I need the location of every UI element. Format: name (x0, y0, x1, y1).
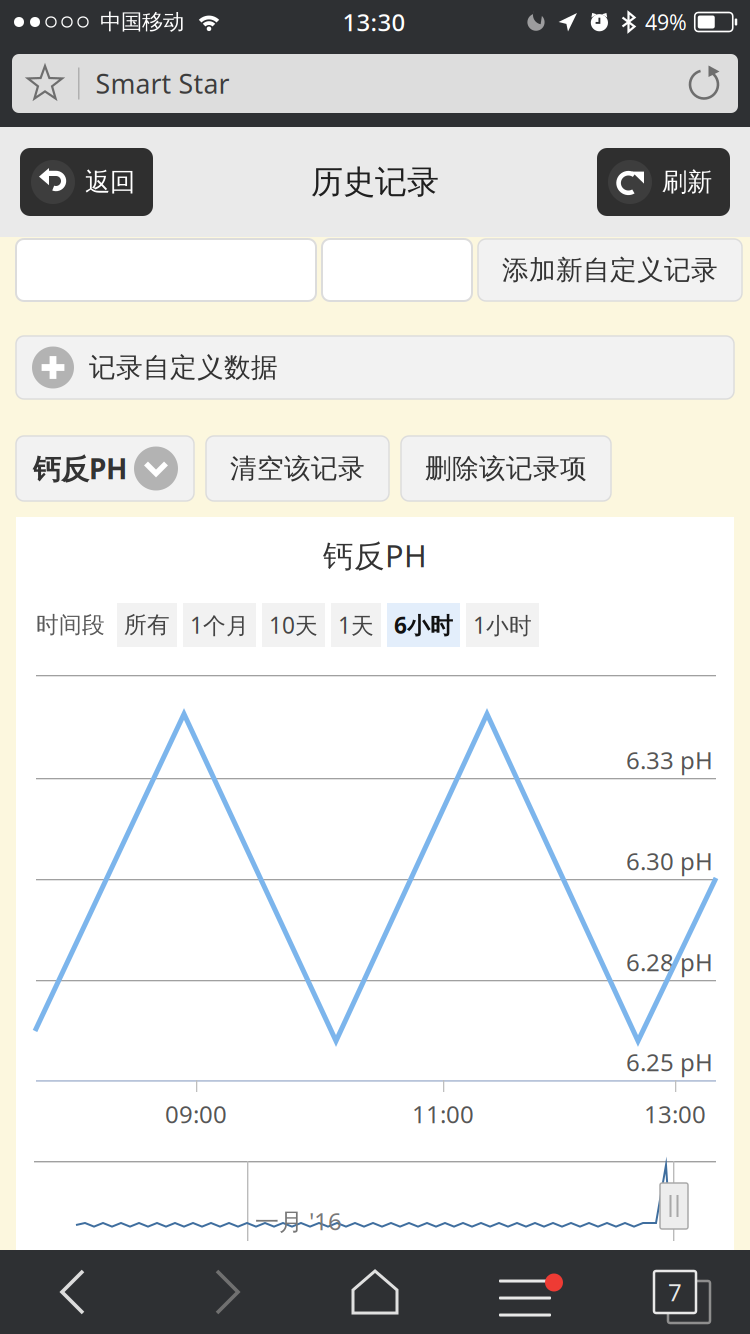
button[interactable]: 记录自定义数据 (16, 336, 734, 399)
staticText: 所有 (124, 611, 170, 639)
staticText: Smart Star (95, 66, 229, 101)
staticText: 10天 (269, 610, 318, 640)
staticText: 时间段 (36, 611, 105, 639)
staticText: 钙反PH (323, 535, 427, 576)
staticText: 11:00 (412, 1098, 474, 1130)
staticText: 49% (645, 8, 687, 36)
button[interactable]: Forward (150, 1252, 300, 1332)
staticText: 13:30 (342, 6, 405, 38)
staticText: 7 (668, 1276, 682, 1308)
button[interactable]: 返回 (20, 148, 153, 216)
button[interactable]: Home (300, 1252, 450, 1332)
staticText: 1天 (338, 610, 374, 640)
button[interactable]: 1个月 (183, 603, 256, 647)
button[interactable]: 删除该记录项 (401, 436, 611, 501)
staticText: 刷新 (662, 166, 712, 197)
button[interactable]: 6小时 (387, 603, 460, 647)
staticText: 09:00 (165, 1098, 227, 1130)
staticText: 记录自定义数据 (89, 351, 278, 384)
button[interactable]: 钙反PH (16, 436, 194, 501)
staticText: 6.28 pH (626, 946, 713, 978)
staticText: 钙反PH (33, 450, 127, 487)
button[interactable]: Menu (450, 1252, 600, 1332)
button[interactable]: 清空该记录 (206, 436, 389, 501)
staticText: 6.33 pH (626, 744, 713, 776)
button[interactable]: Tabs (600, 1252, 750, 1332)
button[interactable]: 10天 (262, 603, 325, 647)
staticText: 6小时 (394, 610, 453, 640)
staticText: 6.30 pH (626, 845, 713, 877)
staticText: 13:00 (644, 1098, 706, 1130)
button[interactable]: 刷新 (597, 148, 730, 216)
button[interactable]: Bookmark (12, 54, 78, 112)
button[interactable]: 1天 (331, 603, 381, 647)
button[interactable]: 1小时 (466, 603, 539, 647)
staticText: 返回 (85, 166, 135, 197)
button[interactable]: 添加新自定义记录 (478, 239, 742, 301)
staticText: 中国移动 (100, 9, 184, 35)
staticText: 历史记录 (311, 162, 439, 202)
staticText: 一月 '16 (255, 1205, 342, 1237)
staticText: 1个月 (190, 610, 249, 640)
staticText: 清空该记录 (230, 452, 365, 485)
button[interactable]: Reload (670, 54, 738, 112)
staticText: 1小时 (473, 610, 532, 640)
staticText: 6.25 pH (626, 1046, 713, 1078)
staticText: 删除该记录项 (425, 452, 587, 485)
staticText: 添加新自定义记录 (502, 254, 718, 286)
button[interactable]: Back (0, 1252, 150, 1332)
button[interactable]: 所有 (117, 603, 177, 647)
